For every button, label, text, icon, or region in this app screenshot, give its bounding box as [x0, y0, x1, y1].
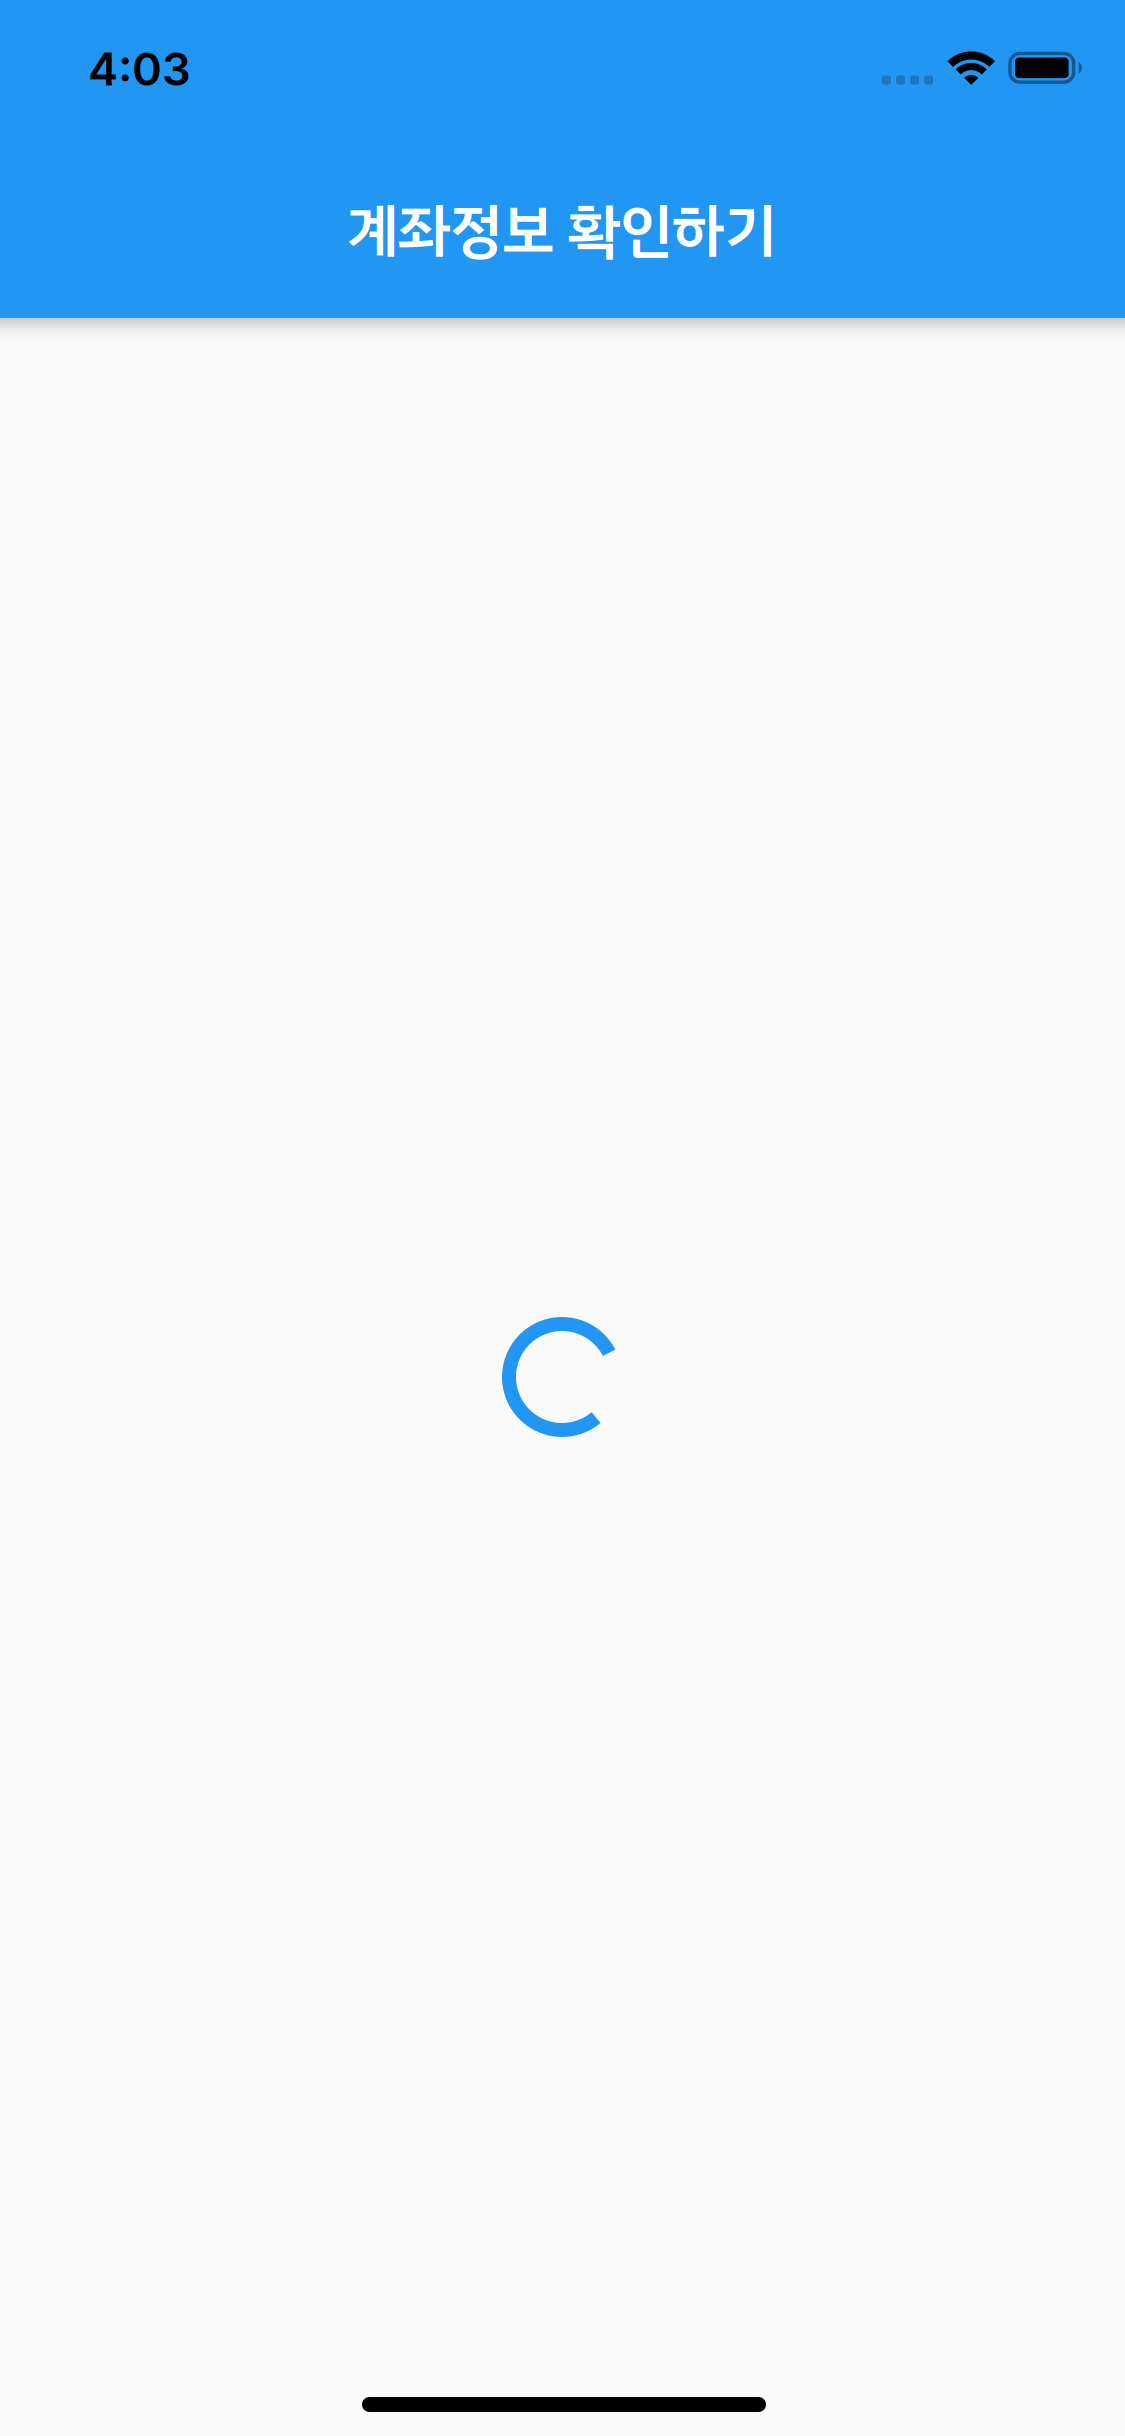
staticText: 4:03: [88, 42, 191, 96]
staticText: 계좌정보 확인하기: [346, 187, 776, 275]
